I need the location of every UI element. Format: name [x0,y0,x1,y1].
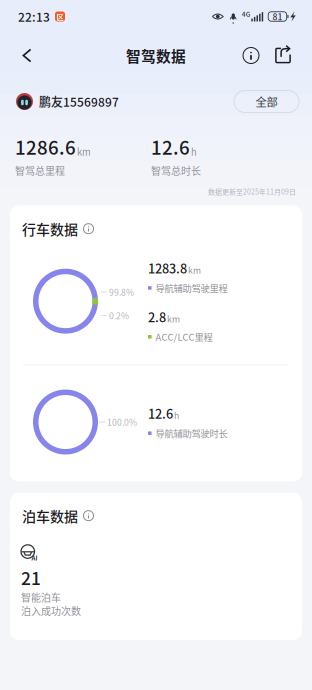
button[interactable]: Info [234,35,268,75]
staticText: h [174,409,179,421]
staticText: 泊车数据 [22,505,78,526]
staticText: 鹏友15569897 [39,93,119,110]
staticText: 21 [21,565,41,590]
button[interactable]: Info [82,509,95,522]
staticText: 100.0% [107,416,137,428]
staticText: 数据更新至2025年11月09日 [208,186,296,196]
staticText: ACC/LCC里程 [156,330,213,343]
staticText: 2.8 [148,308,166,326]
staticText: 导航辅助驾驶里程 [156,281,228,295]
staticText: 智驾数据 [126,45,186,66]
staticText: 1283.8 [148,259,187,277]
staticText: 泊入成功次数 [21,603,81,618]
staticText: 行车数据 [22,218,78,239]
staticText: 智驾总里程 [15,163,65,177]
staticText: 22:13 [18,8,50,25]
staticText: 0.2% [109,309,129,322]
button[interactable]: Share [268,35,298,75]
button[interactable]: Back [8,35,46,75]
staticText: km [167,312,180,325]
staticText: 81 [272,10,282,23]
button[interactable]: Info [82,222,95,235]
button[interactable]: 全部 [234,90,299,112]
staticText: 12.6 [148,404,173,422]
staticText: h [191,145,197,158]
staticText: 智能泊车 [21,590,61,604]
staticText: 12.6 [151,133,190,160]
staticText: 导航辅助驾驶时长 [156,426,228,440]
staticText: 4G [242,9,251,19]
staticText: 1286.6 [15,133,76,160]
staticText: km [77,145,91,158]
staticText: AI [31,553,37,562]
staticText: 区 [56,11,63,22]
staticText: 智驾总时长 [151,163,201,177]
staticText: 全部 [255,93,277,110]
staticText: km [188,264,201,276]
staticText: 99.8% [109,286,134,298]
